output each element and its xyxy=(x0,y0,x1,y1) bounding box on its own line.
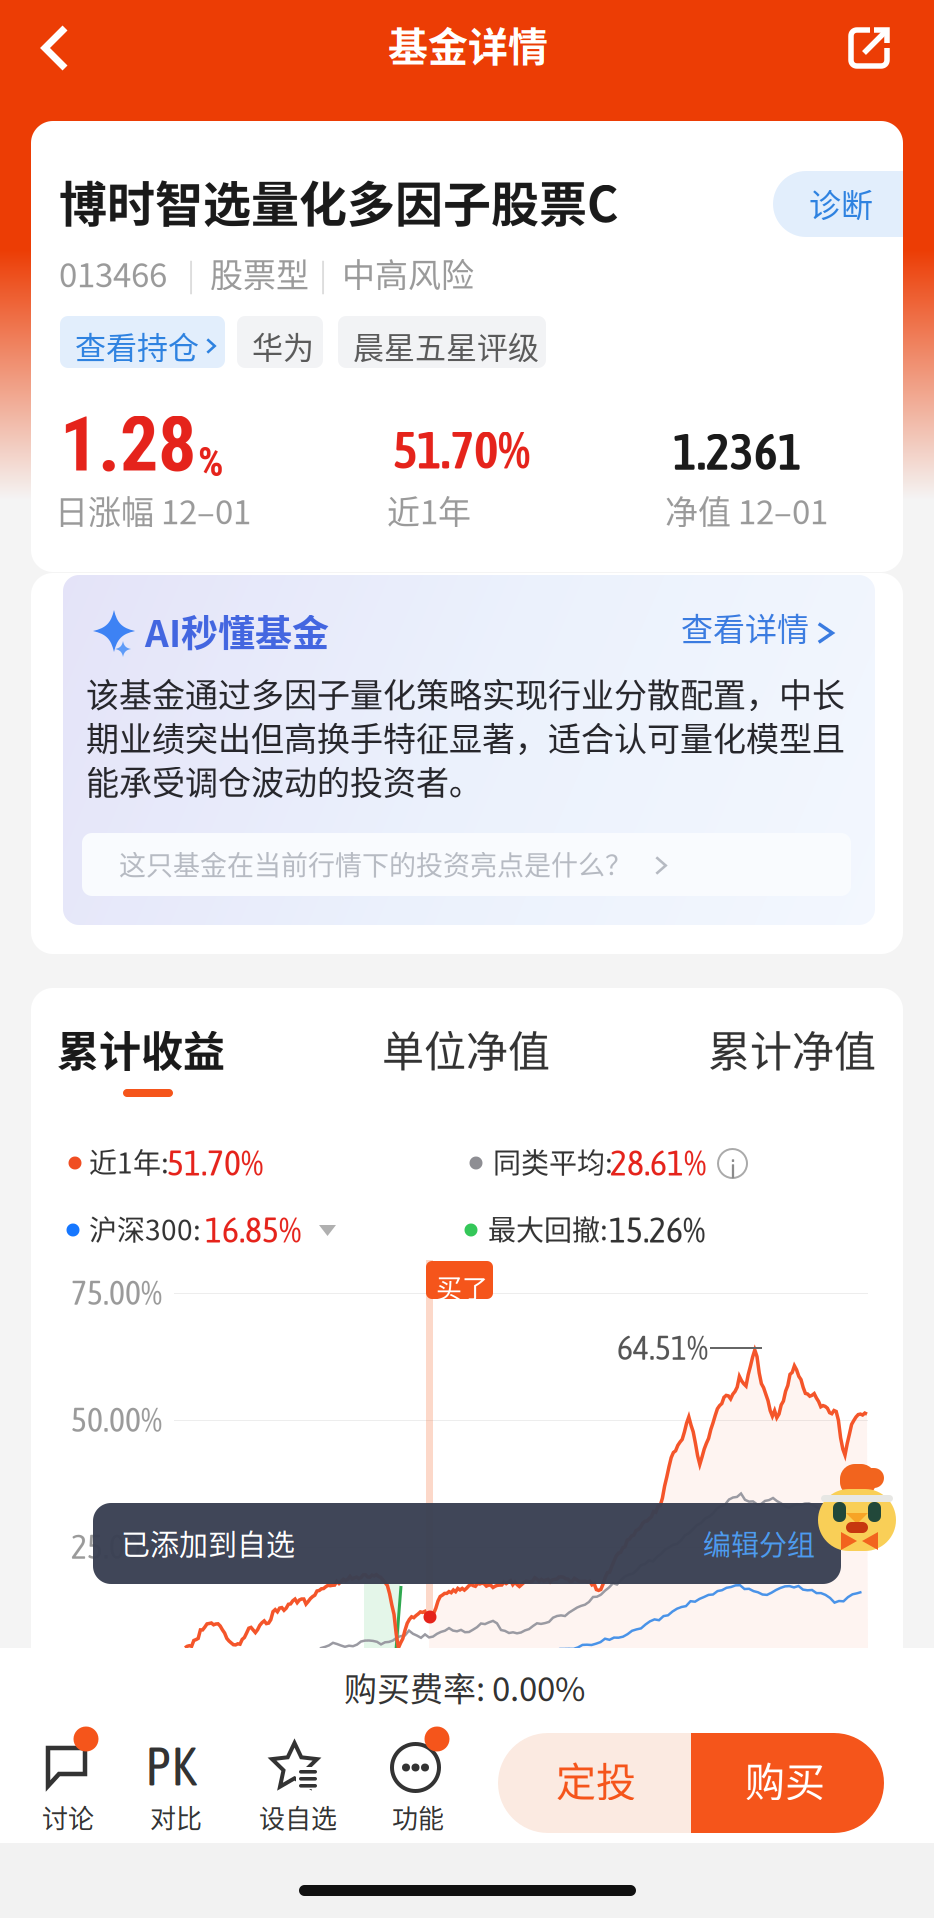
staticText: 最大回撤: xyxy=(488,1208,608,1248)
staticText: 编辑分组 xyxy=(703,1523,815,1563)
staticText: 查看持仓 xyxy=(75,323,199,368)
staticText: 功能 xyxy=(392,1798,444,1836)
staticText: i xyxy=(730,1154,736,1184)
staticText: 日涨幅 12–01 xyxy=(55,486,251,534)
button[interactable]: 晨星五星评级 xyxy=(31,121,239,173)
staticText: 购买 xyxy=(745,1750,825,1808)
staticText: 股票型 xyxy=(210,249,309,297)
button[interactable]: 购买 xyxy=(498,1733,691,1833)
staticText: 这只基金在当前行情下的投资亮点是什么？ xyxy=(119,844,632,883)
button[interactable]: 单位净值 xyxy=(31,988,201,1048)
staticText: % xyxy=(198,439,224,486)
staticText: 51.70% xyxy=(167,1142,263,1183)
button[interactable]: PK xyxy=(121,1719,241,1843)
staticText: 64.51% xyxy=(617,1328,708,1367)
staticText: 近1年 xyxy=(387,486,471,534)
staticText: 15.26% xyxy=(609,1209,705,1250)
button[interactable]: 累计净值 xyxy=(31,988,201,1048)
staticText: 讨论 xyxy=(42,1798,94,1836)
staticText: 近1年: xyxy=(89,1141,169,1181)
staticText: 已添加到自选 xyxy=(121,1522,295,1564)
staticText: 50.00% xyxy=(71,1400,162,1439)
staticText: 净值 12–01 xyxy=(665,486,828,534)
staticText: 25.00% xyxy=(71,1527,162,1566)
staticText: 51.70% xyxy=(393,420,530,480)
staticText: 中高风险 xyxy=(342,249,474,297)
button[interactable]: 查看详情 xyxy=(31,573,191,607)
button[interactable]: 设自选 xyxy=(245,1719,365,1843)
button[interactable]: 诊断 xyxy=(31,121,196,187)
button[interactable]: 这只基金在当前行情下的投资亮点是什么？ xyxy=(31,573,800,636)
button[interactable]: 累计收益 xyxy=(31,988,211,1072)
staticText: 基金详情 xyxy=(388,15,548,73)
staticText: 1.2361 xyxy=(673,423,802,480)
button[interactable]: 讨论 xyxy=(21,1719,141,1843)
staticText: 1.28 xyxy=(60,400,196,489)
staticText: 查看详情 xyxy=(681,604,809,650)
staticText: | xyxy=(187,251,195,294)
staticText: 买了 xyxy=(436,1268,488,1306)
button[interactable]: 功能 xyxy=(366,1719,486,1843)
button[interactable]: 定投 xyxy=(498,1733,691,1833)
staticText: 诊断 xyxy=(809,180,873,226)
staticText: 该基金通过多因子量化策略实现行业分散配置，中长期业绩突出但高换手特征显著，适合认… xyxy=(86,669,845,804)
staticText: AI秒懂基金 xyxy=(145,604,329,658)
staticText: 晨星五星评级 xyxy=(353,323,539,368)
staticText: 累计收益 xyxy=(57,1018,225,1079)
staticText: 定投 xyxy=(556,1750,636,1808)
button[interactable]: 华为 xyxy=(31,121,117,173)
staticText: 同类平均: xyxy=(493,1141,613,1181)
staticText: 75.00% xyxy=(71,1273,162,1312)
staticText: 购买费率: 0.00% xyxy=(344,1663,585,1711)
staticText: 博时智选量化多因子股票C xyxy=(59,166,618,235)
button[interactable]: 查看持仓 xyxy=(31,121,196,173)
staticText: 16.85% xyxy=(205,1209,301,1250)
button[interactable]: 编辑分组 xyxy=(93,1503,205,1543)
staticText: 013466 xyxy=(59,249,167,297)
staticText: 累计净值 xyxy=(708,1018,876,1079)
staticText: 28.61% xyxy=(610,1142,706,1183)
staticText: 华为 xyxy=(252,323,314,368)
staticText: PK xyxy=(145,1735,197,1797)
button[interactable]: 返回 xyxy=(0,0,64,60)
staticText: 沪深300: xyxy=(89,1208,201,1248)
staticText: 单位净值 xyxy=(382,1018,550,1079)
staticText: 对比 xyxy=(150,1798,202,1836)
staticText: | xyxy=(319,251,327,294)
staticText: 设自选 xyxy=(259,1798,337,1836)
